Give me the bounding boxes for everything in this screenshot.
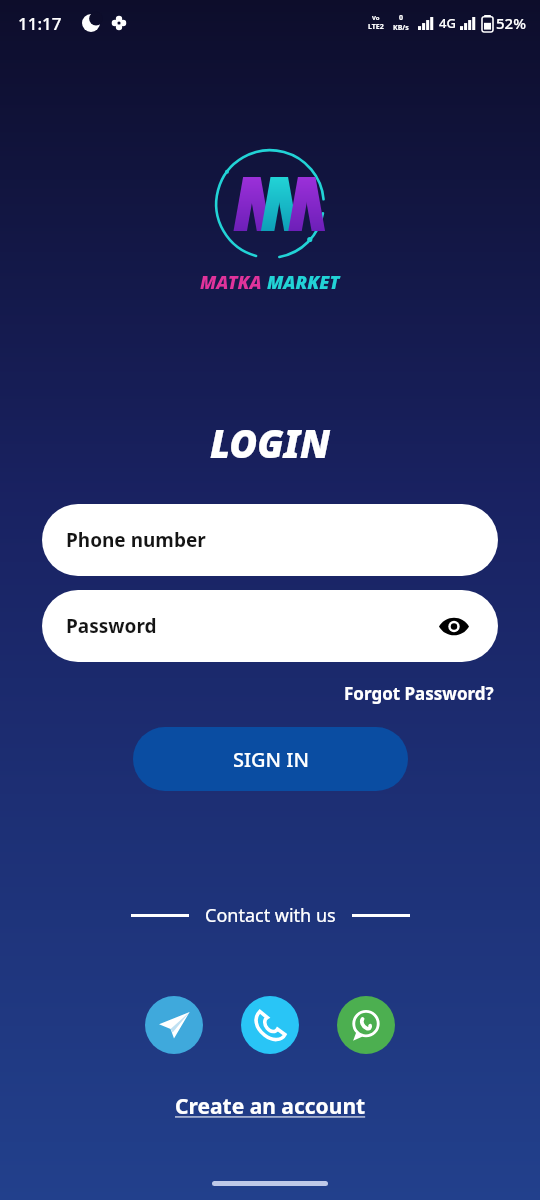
staticText: Vo [372,14,380,22]
staticText: LOGIN [210,417,331,469]
staticText: Create an account [175,1092,366,1121]
staticText: MARKET [267,270,340,295]
staticText: MATKA [200,270,267,295]
staticText: Password [66,613,157,639]
staticText: LTE2 [368,22,384,32]
button[interactable]: Phone number [42,504,498,576]
staticText: Contact with us [205,903,336,928]
button[interactable]: WhatsApp [337,996,395,1054]
button[interactable]: Telegram [145,996,203,1054]
staticText: KB/s [393,23,409,33]
button[interactable]: Forgot Password? [340,678,498,709]
button[interactable]: Create an account [169,1090,372,1123]
staticText: 4G [439,14,456,32]
button[interactable]: Password [42,590,498,662]
staticText: 52% [496,13,526,33]
staticText: 0 [399,13,404,23]
staticText: Forgot Password? [344,682,494,705]
staticText: SIGN IN [233,746,309,773]
staticText: 11:17 [18,12,62,35]
staticText: Phone number [66,527,206,553]
button[interactable]: Call [241,996,299,1054]
button[interactable]: SIGN IN [133,727,408,791]
button[interactable]: Show password [434,606,474,646]
